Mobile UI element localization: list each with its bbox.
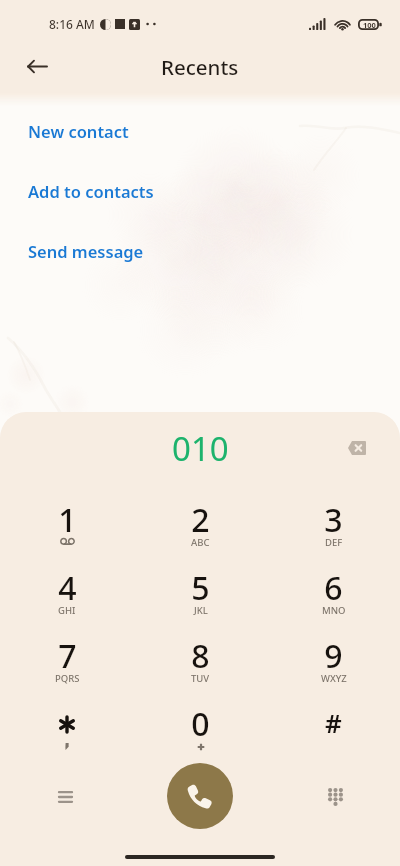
staticText: 1 <box>58 498 77 542</box>
staticText: 4 <box>58 566 77 610</box>
button[interactable]: 0 <box>134 702 267 770</box>
staticText: 2 <box>191 498 210 542</box>
staticText: New contact <box>28 120 129 142</box>
button[interactable] <box>0 702 134 770</box>
button[interactable]: 4 <box>0 566 134 634</box>
button[interactable]: 2 <box>134 498 267 566</box>
staticText: 0 <box>191 702 210 746</box>
staticText: 8:16 AM <box>49 16 95 32</box>
staticText: JKL <box>194 604 208 617</box>
button[interactable]: # <box>267 702 400 770</box>
button[interactable]: New contact <box>28 120 129 142</box>
staticText: 5 <box>191 566 210 610</box>
button[interactable]: Call log <box>44 776 86 818</box>
staticText: PQRS <box>55 672 80 685</box>
button[interactable]: 6 <box>267 566 400 634</box>
staticText: 9 <box>324 634 343 678</box>
button[interactable]: Backspace <box>334 426 378 470</box>
staticText: Send message <box>28 240 144 262</box>
staticText: 6 <box>324 566 343 610</box>
staticText: DEF <box>325 536 343 549</box>
staticText: 100 <box>363 20 376 30</box>
staticText: 8 <box>191 634 210 678</box>
button[interactable]: 8 <box>134 634 267 702</box>
staticText: ABC <box>191 536 210 549</box>
staticText: WXYZ <box>321 672 347 685</box>
button[interactable]: Send message <box>28 240 144 262</box>
button[interactable]: Call <box>167 763 233 829</box>
button[interactable]: 9 <box>267 634 400 702</box>
staticText: MNO <box>322 604 346 617</box>
staticText: GHI <box>58 604 76 617</box>
staticText: 010 <box>172 426 229 471</box>
button[interactable]: 5 <box>134 566 267 634</box>
staticText: Recents <box>161 53 239 81</box>
staticText: Add to contacts <box>28 180 154 202</box>
button[interactable]: 3 <box>267 498 400 566</box>
button[interactable]: Add to contacts <box>28 180 154 202</box>
button[interactable]: 1 <box>0 498 134 566</box>
button[interactable]: 7 <box>0 634 134 702</box>
button[interactable]: Back <box>14 44 59 89</box>
staticText: TUV <box>191 672 210 685</box>
staticText: # <box>325 705 342 740</box>
button[interactable]: Keypad <box>314 776 356 818</box>
staticText: 7 <box>58 634 77 678</box>
staticText: 3 <box>324 498 343 542</box>
